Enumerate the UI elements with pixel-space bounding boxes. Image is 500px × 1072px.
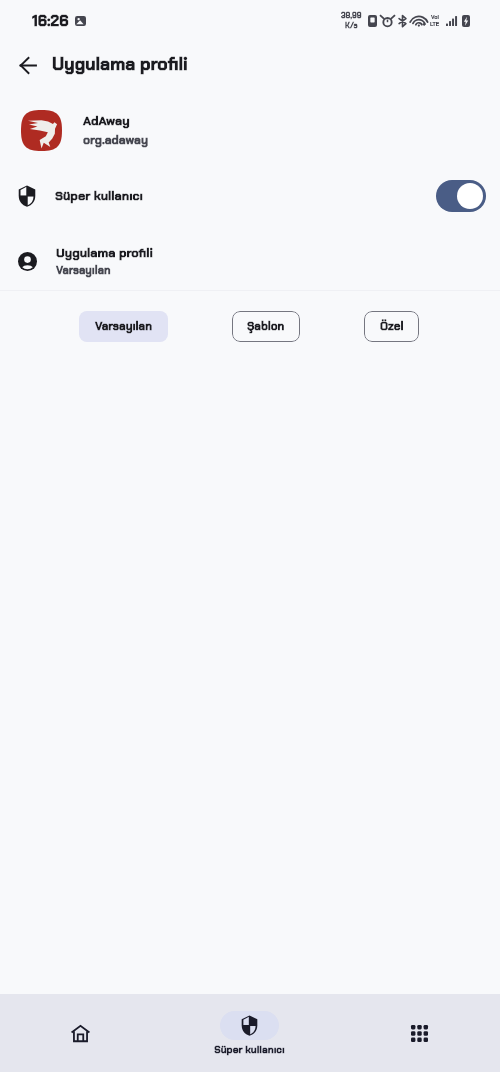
staticText: Süper kullanıcı — [55, 188, 143, 204]
staticText: Varsayılan — [56, 263, 111, 277]
button[interactable]: Home — [0, 994, 166, 1072]
staticText: Uygulama profili — [56, 245, 154, 261]
button[interactable]: Şablon — [232, 311, 300, 342]
staticText: K/s — [345, 21, 358, 31]
staticText: LTE — [430, 21, 440, 28]
button[interactable]: Back — [8, 45, 48, 85]
staticText: org.adaway — [83, 132, 149, 148]
staticText: AdAway — [83, 113, 130, 129]
button[interactable]: AdAway — [0, 95, 500, 165]
button[interactable]: Varsayılan — [79, 311, 168, 342]
button[interactable]: Uygulama profili — [0, 231, 500, 291]
staticText: 16:26 — [32, 11, 69, 31]
button[interactable]: Süper kullanıcı — [436, 180, 486, 212]
staticText: Vol — [431, 14, 439, 21]
button[interactable]: Apps — [333, 994, 500, 1072]
button[interactable]: Özel — [364, 311, 419, 342]
staticText: Uygulama profili — [52, 53, 188, 76]
staticText: 38,99 — [341, 11, 362, 21]
staticText: Varsayılan — [95, 319, 153, 334]
button[interactable]: Süper kullanıcı — [166, 994, 333, 1072]
staticText: Süper kullanıcı — [214, 1043, 285, 1056]
staticText: Şablon — [247, 319, 285, 334]
staticText: Özel — [380, 319, 404, 334]
button[interactable]: Süper kullanıcı — [0, 168, 500, 224]
